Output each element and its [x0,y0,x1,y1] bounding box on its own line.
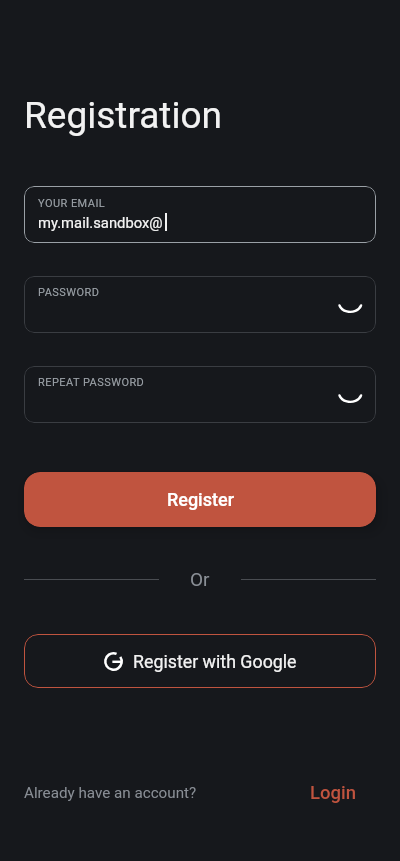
button[interactable]: Register [24,472,376,527]
button[interactable]: YOUR EMAIL [24,186,376,243]
staticText: Or [190,568,210,590]
button[interactable]: Register with Google [24,634,376,688]
button[interactable]: Toggle password visibility [336,381,364,409]
staticText: Registration [24,94,222,137]
staticText: Login [310,782,357,804]
staticText: PASSWORD [38,286,100,299]
staticText: Register with Google [133,651,297,672]
button[interactable]: REPEAT PASSWORD [24,366,376,423]
staticText: YOUR EMAIL [38,197,106,210]
staticText: REPEAT PASSWORD [38,376,145,389]
staticText: Register [167,489,234,510]
staticText: Already have an account? [24,784,197,802]
button[interactable]: PASSWORD [24,276,376,333]
button[interactable]: Toggle password visibility [336,291,364,319]
button[interactable]: Login [310,782,376,804]
staticText: my.mail.sandbox@ [38,214,163,231]
